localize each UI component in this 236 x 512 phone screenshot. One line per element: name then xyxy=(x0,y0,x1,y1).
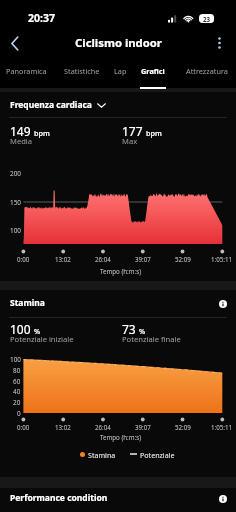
staticText: 52:09 xyxy=(175,423,191,431)
staticText: 40 xyxy=(13,387,21,396)
staticText: 80 xyxy=(13,366,21,375)
button[interactable]: Panoramica xyxy=(0,58,52,88)
button[interactable]: Statistiche xyxy=(52,58,112,88)
button[interactable]: Info xyxy=(216,492,229,505)
staticText: 177 xyxy=(122,123,143,139)
staticText: 100 xyxy=(10,226,21,235)
staticText: Potenziale iniziale xyxy=(10,334,74,344)
staticText: Grafici xyxy=(141,66,165,76)
staticText: Lap xyxy=(114,66,127,76)
staticText: 0 xyxy=(17,409,21,418)
button[interactable]: Frequenza cardiaca xyxy=(10,95,229,115)
staticText: 0:00 xyxy=(17,255,30,263)
staticText: 0:00 xyxy=(17,423,30,431)
staticText: 100 xyxy=(10,321,31,337)
staticText: % xyxy=(34,326,41,336)
staticText: Stamina xyxy=(88,450,116,460)
staticText: Potenziale finale xyxy=(122,334,181,344)
staticText: Performance condition xyxy=(10,492,108,504)
button[interactable]: Info xyxy=(216,297,229,310)
staticText: Attrezzatura xyxy=(186,66,228,76)
button[interactable]: Attrezzatura xyxy=(177,58,236,88)
staticText: 150 xyxy=(10,198,21,207)
button[interactable]: Stamina xyxy=(10,293,229,313)
staticText: 52:09 xyxy=(175,255,191,263)
staticText: 20 xyxy=(13,398,21,407)
staticText: 26:04 xyxy=(95,255,111,263)
staticText: 73 xyxy=(122,321,136,337)
button[interactable]: More options xyxy=(207,31,231,55)
staticText: Tempo (h:m:s) xyxy=(100,433,142,441)
staticText: Media xyxy=(10,136,33,146)
button[interactable]: Lap xyxy=(112,58,128,88)
button[interactable]: Grafici xyxy=(128,58,177,88)
staticText: 13:02 xyxy=(55,255,71,263)
staticText: bpm xyxy=(146,128,162,138)
staticText: bpm xyxy=(34,128,50,138)
staticText: Tempo (h:m:s) xyxy=(100,267,142,275)
staticText: 23 xyxy=(203,15,211,23)
button[interactable]: Back xyxy=(2,30,28,56)
staticText: Ciclismo indoor xyxy=(75,35,162,50)
button[interactable]: Performance condition xyxy=(10,488,229,508)
staticText: 39:07 xyxy=(135,255,151,263)
staticText: Frequenza cardiaca xyxy=(10,99,92,111)
staticText: 26:04 xyxy=(95,423,111,431)
staticText: 39:07 xyxy=(135,423,151,431)
staticText: 100 xyxy=(10,355,21,364)
staticText: % xyxy=(139,326,146,336)
staticText: 1:05:11 xyxy=(211,423,233,431)
staticText: 1:05:11 xyxy=(211,255,233,263)
staticText: Panoramica xyxy=(6,66,47,76)
staticText: 149 xyxy=(10,123,31,139)
staticText: 20:37 xyxy=(28,11,55,25)
staticText: 60 xyxy=(13,377,21,386)
staticText: Stamina xyxy=(10,297,45,309)
staticText: Potenziale xyxy=(140,450,175,460)
staticText: 200 xyxy=(10,169,21,178)
staticText: Max xyxy=(122,136,138,146)
staticText: Statistiche xyxy=(64,66,100,76)
staticText: 13:02 xyxy=(55,423,71,431)
